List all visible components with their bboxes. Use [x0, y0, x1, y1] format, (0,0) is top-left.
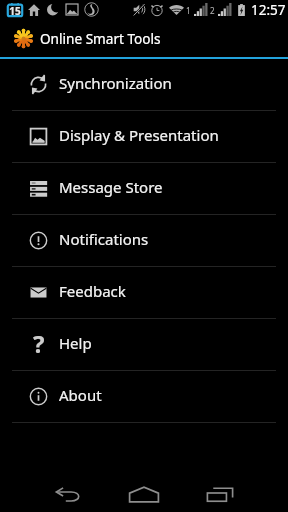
- button[interactable]: ?: [0, 319, 288, 371]
- staticText: About: [59, 385, 102, 405]
- staticText: Synchronization: [59, 73, 172, 93]
- button[interactable]: Notifications: [0, 215, 288, 267]
- staticText: ?: [33, 327, 45, 353]
- button[interactable]: Online Smart Tools: [0, 20, 288, 57]
- staticText: 15: [9, 4, 21, 18]
- staticText: Message Store: [59, 177, 163, 197]
- staticText: Online Smart Tools: [40, 29, 161, 48]
- button[interactable]: Message Store: [0, 163, 288, 215]
- button[interactable]: Back: [36, 470, 100, 512]
- button[interactable]: Display & Presentation: [0, 111, 288, 163]
- staticText: 2: [210, 5, 215, 16]
- staticText: Help: [59, 333, 92, 353]
- staticText: 1: [186, 5, 191, 16]
- staticText: Feedback: [59, 281, 126, 301]
- staticText: 12:57: [251, 1, 286, 19]
- staticText: Notifications: [59, 229, 149, 249]
- button[interactable]: Home: [112, 470, 176, 512]
- button[interactable]: Synchronization: [0, 59, 288, 111]
- button[interactable]: Recent apps: [188, 470, 252, 512]
- staticText: Display & Presentation: [59, 125, 219, 145]
- button[interactable]: Feedback: [0, 267, 288, 319]
- button[interactable]: About: [0, 371, 288, 423]
